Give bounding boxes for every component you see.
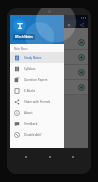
button[interactable]: Share (78, 21, 85, 28)
button[interactable] (10, 65, 88, 79)
button[interactable]: Question Papers (10, 74, 64, 85)
button[interactable]: Back (21, 152, 30, 161)
staticText: Share with Friends (24, 100, 51, 104)
button[interactable]: Notifications (65, 21, 72, 28)
staticText: Syllabus (24, 67, 36, 71)
button[interactable]: Syllabus (10, 63, 64, 74)
button[interactable]: Feedback (10, 118, 64, 129)
button[interactable] (10, 50, 88, 64)
button[interactable]: About (10, 107, 64, 118)
staticText: BTech Notes (15, 35, 33, 39)
staticText: Main Menu (14, 47, 28, 51)
staticText: About (24, 111, 33, 115)
button[interactable]: Recents (68, 152, 77, 161)
button[interactable]: Share with Friends (10, 96, 64, 107)
button[interactable]: E-Books (10, 85, 64, 96)
staticText: Study Notes (24, 56, 42, 60)
staticText: E-Books (24, 89, 36, 93)
button[interactable]: Home (45, 152, 54, 161)
button[interactable]: Study Notes (10, 52, 64, 63)
button[interactable]: Disable Ads? (10, 129, 64, 140)
staticText: Feedback (24, 122, 38, 126)
button[interactable] (10, 80, 88, 94)
staticText: Last Subject (13, 30, 30, 34)
button[interactable] (10, 35, 88, 49)
staticText: Question Papers (24, 78, 48, 82)
staticText: Disable Ads? (24, 133, 42, 137)
